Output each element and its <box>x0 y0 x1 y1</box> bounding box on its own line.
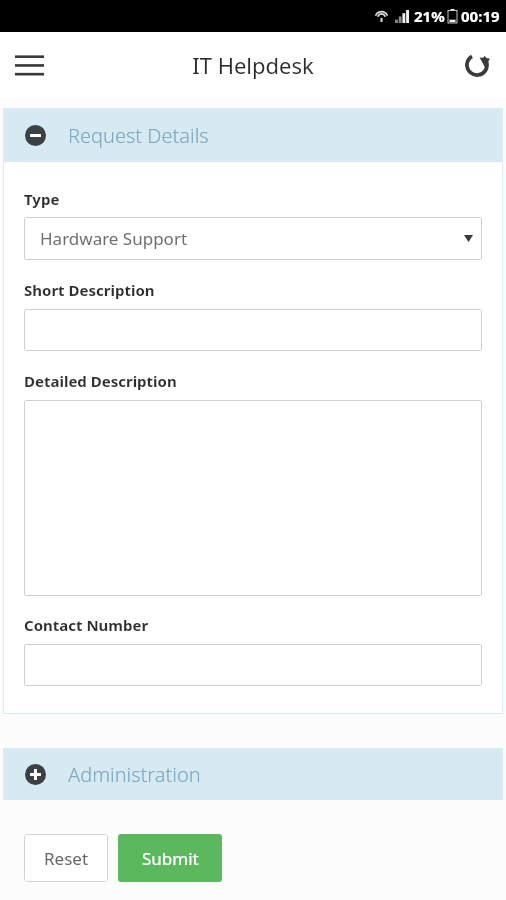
button[interactable]: Refresh <box>448 36 506 94</box>
staticText: 00:19 <box>461 6 500 26</box>
staticText: Type <box>24 189 60 209</box>
button[interactable]: Open navigation menu <box>0 36 58 94</box>
staticText: Submit <box>142 847 199 870</box>
staticText: 21% <box>414 6 445 26</box>
button[interactable] <box>24 644 482 686</box>
button[interactable]: Submit <box>118 834 222 882</box>
staticText: Request Details <box>68 122 209 149</box>
staticText: Contact Number <box>24 615 149 635</box>
button[interactable]: Request Details <box>3 108 503 162</box>
staticText: Hardware Support <box>40 227 188 250</box>
staticText: Reset <box>44 847 89 870</box>
button[interactable]: Administration <box>3 748 503 800</box>
button[interactable] <box>24 400 482 596</box>
button[interactable]: Reset <box>24 834 108 882</box>
staticText: IT Helpdesk <box>192 50 314 80</box>
staticText: Detailed Description <box>24 371 177 391</box>
button[interactable] <box>24 309 482 351</box>
staticText: Short Description <box>24 280 155 300</box>
button[interactable]: Hardware Support <box>24 217 482 260</box>
staticText: Administration <box>68 761 201 788</box>
